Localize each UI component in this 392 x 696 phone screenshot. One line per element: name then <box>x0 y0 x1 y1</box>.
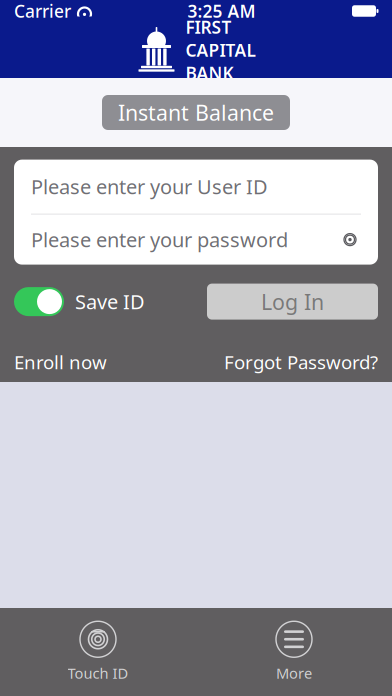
staticText: Please enter your User ID <box>31 173 268 200</box>
staticText: Carrier <box>14 0 71 22</box>
staticText: Please enter your password <box>31 226 288 253</box>
button[interactable]: Touch ID <box>0 608 196 696</box>
staticText: Instant Balance <box>118 98 274 127</box>
staticText: Forgot Password? <box>224 350 378 374</box>
button[interactable]: Save ID <box>14 287 145 316</box>
button[interactable]: Log In <box>207 284 378 320</box>
button[interactable]: Please enter your User ID <box>14 160 378 214</box>
staticText: CAPITAL <box>185 38 255 61</box>
button[interactable]: More <box>196 608 392 696</box>
staticText: 3:25 AM <box>187 0 255 22</box>
staticText: More <box>276 663 312 683</box>
staticText: Touch ID <box>67 663 128 683</box>
staticText: Save ID <box>75 288 145 315</box>
button[interactable]: Forgot Password? <box>224 350 378 374</box>
staticText: BANK <box>185 61 233 84</box>
button[interactable]: Please enter your password <box>14 215 378 265</box>
staticText: Enroll now <box>14 350 107 374</box>
staticText: FIRST <box>185 15 231 38</box>
button[interactable]: Enroll now <box>14 350 107 374</box>
staticText: Log In <box>261 287 324 316</box>
button[interactable]: Instant Balance <box>102 95 290 130</box>
